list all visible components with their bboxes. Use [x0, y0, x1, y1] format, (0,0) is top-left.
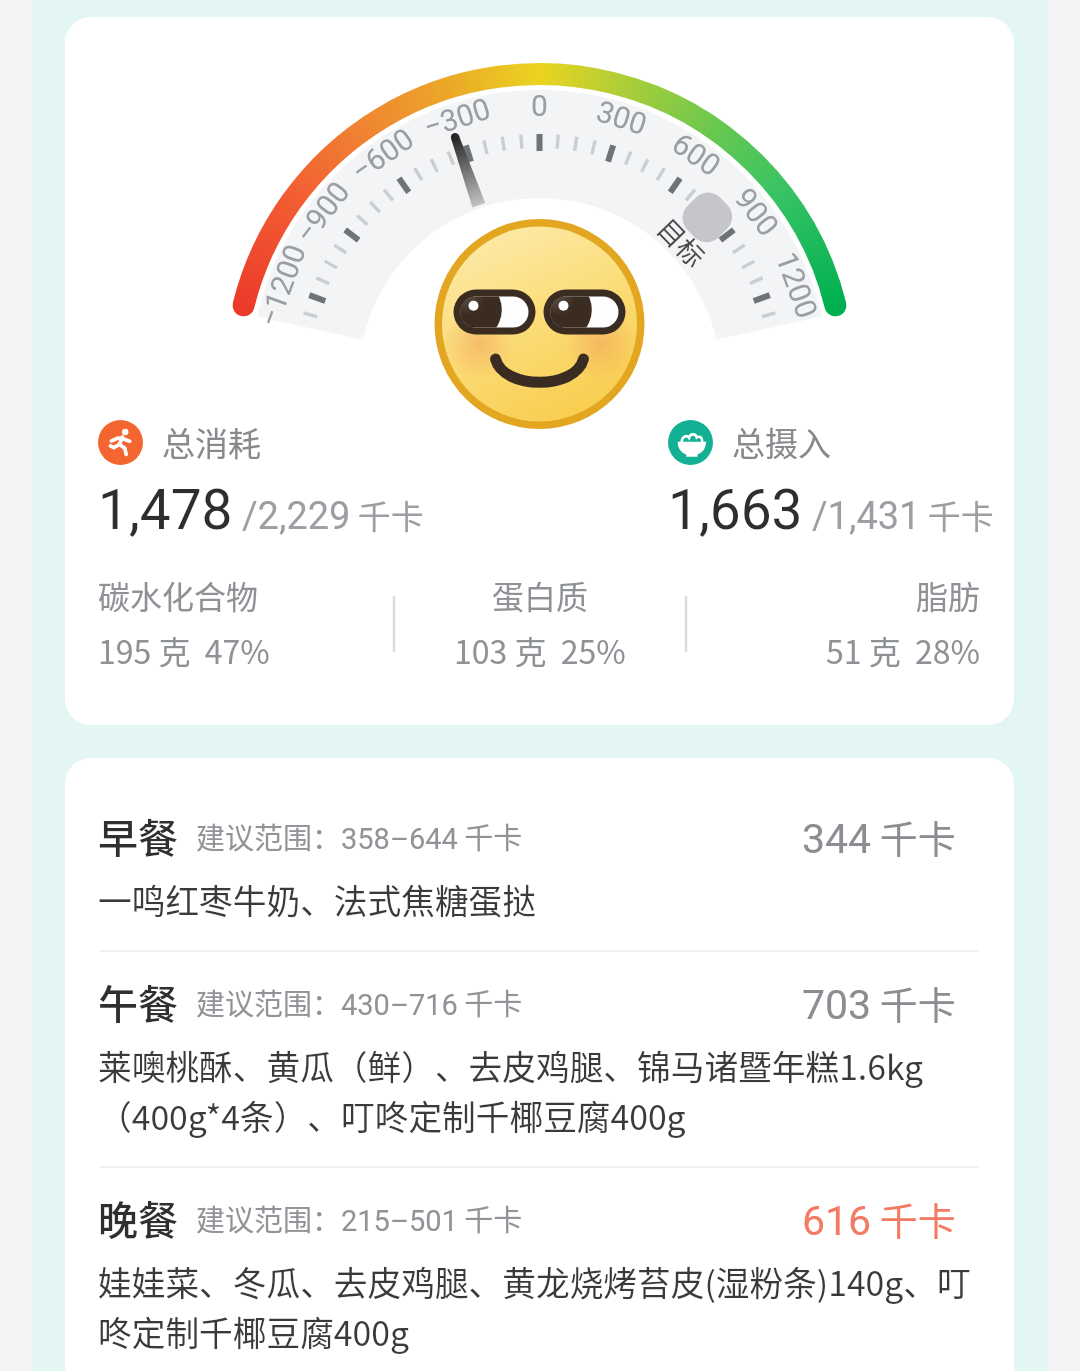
staticText: 703 千卡: [802, 975, 956, 1030]
staticText: 碳水化合物: [98, 572, 259, 618]
staticText: 1,478 /2,229 千卡: [98, 478, 424, 542]
staticText: 建议范围：358–644 千卡: [196, 815, 523, 857]
staticText: 娃娃菜、冬瓜、去皮鸡腿、黄龙烧烤苔皮(湿粉条)140g、叮咚定制千椰豆腐400g: [98, 1257, 979, 1356]
staticText: 1,663 /1,431 千卡: [668, 478, 994, 542]
staticText: 51 克 28%: [826, 627, 981, 673]
button[interactable]: 午餐: [65, 952, 1014, 1166]
staticText: 蛋白质: [492, 572, 589, 618]
staticText: 莱噢桃酥、黄瓜（鲜）、去皮鸡腿、锦马诸暨年糕1.6kg（400g*4条）、叮咚定…: [98, 1041, 979, 1140]
staticText: 建议范围：215–501 千卡: [196, 1197, 523, 1239]
staticText: 195 克 47%: [98, 627, 270, 673]
staticText: 总消耗: [162, 418, 261, 466]
staticText: 616 千卡: [802, 1191, 956, 1246]
staticText: 总摄入: [732, 418, 831, 466]
staticText: 344 千卡: [802, 809, 956, 864]
staticText: 一鸣红枣牛奶、法式焦糖蛋挞: [98, 875, 536, 924]
staticText: 建议范围：430–716 千卡: [196, 981, 523, 1023]
staticText: 午餐: [98, 973, 178, 1031]
button[interactable]: 晚餐: [65, 1168, 1014, 1371]
staticText: 脂肪: [916, 572, 981, 618]
staticText: 早餐: [98, 807, 178, 865]
button[interactable]: 早餐: [65, 786, 1014, 950]
staticText: 103 克 25%: [454, 627, 626, 673]
staticText: 晚餐: [98, 1189, 178, 1247]
